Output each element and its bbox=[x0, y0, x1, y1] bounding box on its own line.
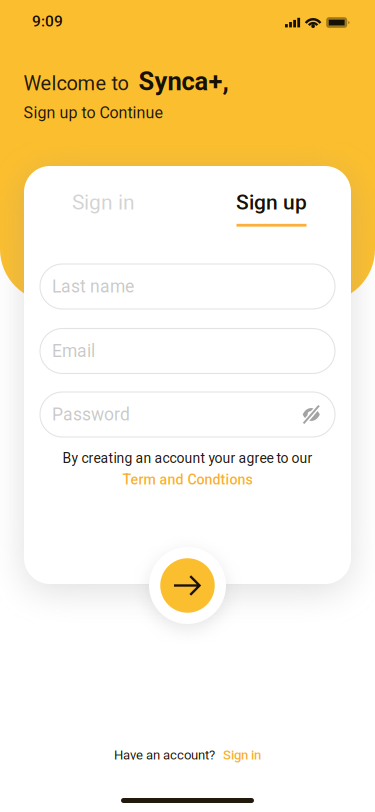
staticText: 9:09 bbox=[32, 12, 63, 30]
button[interactable]: Continue bbox=[149, 547, 226, 624]
staticText: Sign up bbox=[236, 190, 307, 215]
staticText: Term and Condtions bbox=[122, 471, 252, 488]
staticText: Password bbox=[52, 404, 130, 425]
button[interactable]: Sign in tab bbox=[36, 186, 170, 230]
button[interactable]: Sign up tab bbox=[204, 186, 338, 230]
button[interactable]: Password bbox=[40, 392, 335, 437]
staticText: Sign up to Continue bbox=[24, 103, 163, 122]
button[interactable]: Email bbox=[40, 328, 335, 373]
button[interactable]: Sign in bbox=[223, 747, 261, 763]
staticText: Last name bbox=[52, 276, 134, 297]
button[interactable]: Term and Condtions bbox=[122, 471, 252, 488]
staticText: Sign in bbox=[223, 747, 261, 763]
staticText: Sign in bbox=[72, 190, 135, 215]
staticText: Have an account? bbox=[114, 747, 215, 763]
staticText: By creating an account your agree to our bbox=[62, 450, 312, 466]
staticText: Synca+, bbox=[139, 66, 229, 96]
staticText: Email bbox=[52, 341, 95, 361]
button[interactable]: Last name bbox=[40, 264, 335, 309]
staticText: Welcome to bbox=[24, 72, 129, 95]
